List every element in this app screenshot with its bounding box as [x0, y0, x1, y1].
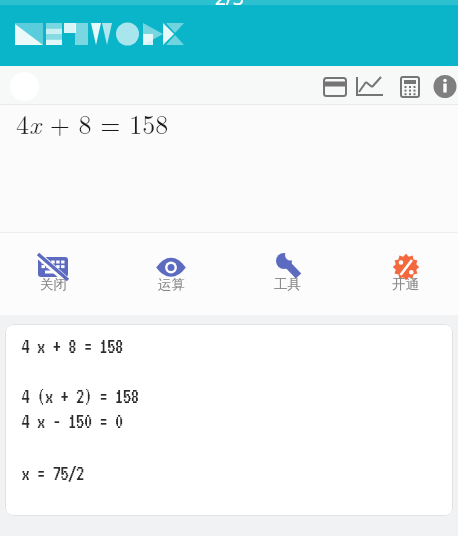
button[interactable]: 开通	[343, 233, 458, 315]
staticText: 4 x - 150 = 0	[21, 410, 123, 433]
staticText: 工具	[274, 276, 301, 293]
button[interactable]	[352, 74, 384, 100]
button[interactable]	[431, 73, 458, 100]
staticText: 4x + 8 = 158	[16, 105, 169, 142]
staticText: 运算	[158, 276, 185, 293]
button[interactable]	[320, 74, 348, 100]
button[interactable]: 关闭	[0, 233, 114, 315]
staticText: 关闭	[40, 276, 67, 293]
staticText: 开通	[392, 276, 419, 293]
staticText: 4 (x + 2) = 158	[21, 385, 138, 408]
button[interactable]	[10, 72, 39, 101]
button[interactable]: 运算	[114, 233, 228, 315]
staticText: 2/3	[215, 0, 244, 11]
staticText: x = 75/2	[21, 462, 84, 485]
button[interactable]	[396, 74, 422, 100]
button[interactable]: 工具	[228, 233, 343, 315]
staticText: 4 x + 8 = 158	[21, 335, 123, 358]
